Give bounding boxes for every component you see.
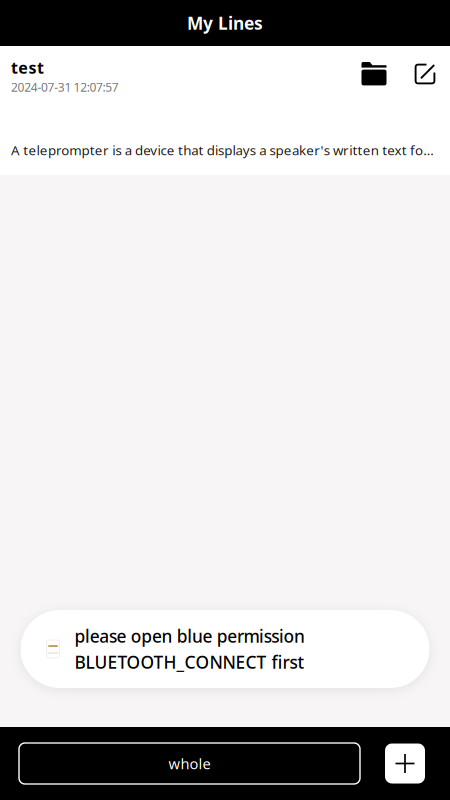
button[interactable]: Edit (404, 57, 446, 91)
staticText: BLUETOOTH_CONNECT first (74, 650, 304, 673)
staticText: please open blue permission (74, 624, 305, 647)
staticText: whole (168, 754, 210, 773)
button[interactable]: test (11, 57, 119, 95)
staticText: 2024-07-31 12:07:57 (11, 79, 119, 95)
staticText: A teleprompter is a device that displays… (11, 141, 434, 159)
button[interactable]: Add (385, 743, 425, 783)
button[interactable]: A teleprompter is a device that displays… (0, 136, 450, 164)
staticText: My Lines (187, 11, 263, 34)
button[interactable]: whole (19, 743, 360, 784)
staticText: test (11, 57, 44, 78)
button[interactable]: Folders (344, 57, 404, 91)
